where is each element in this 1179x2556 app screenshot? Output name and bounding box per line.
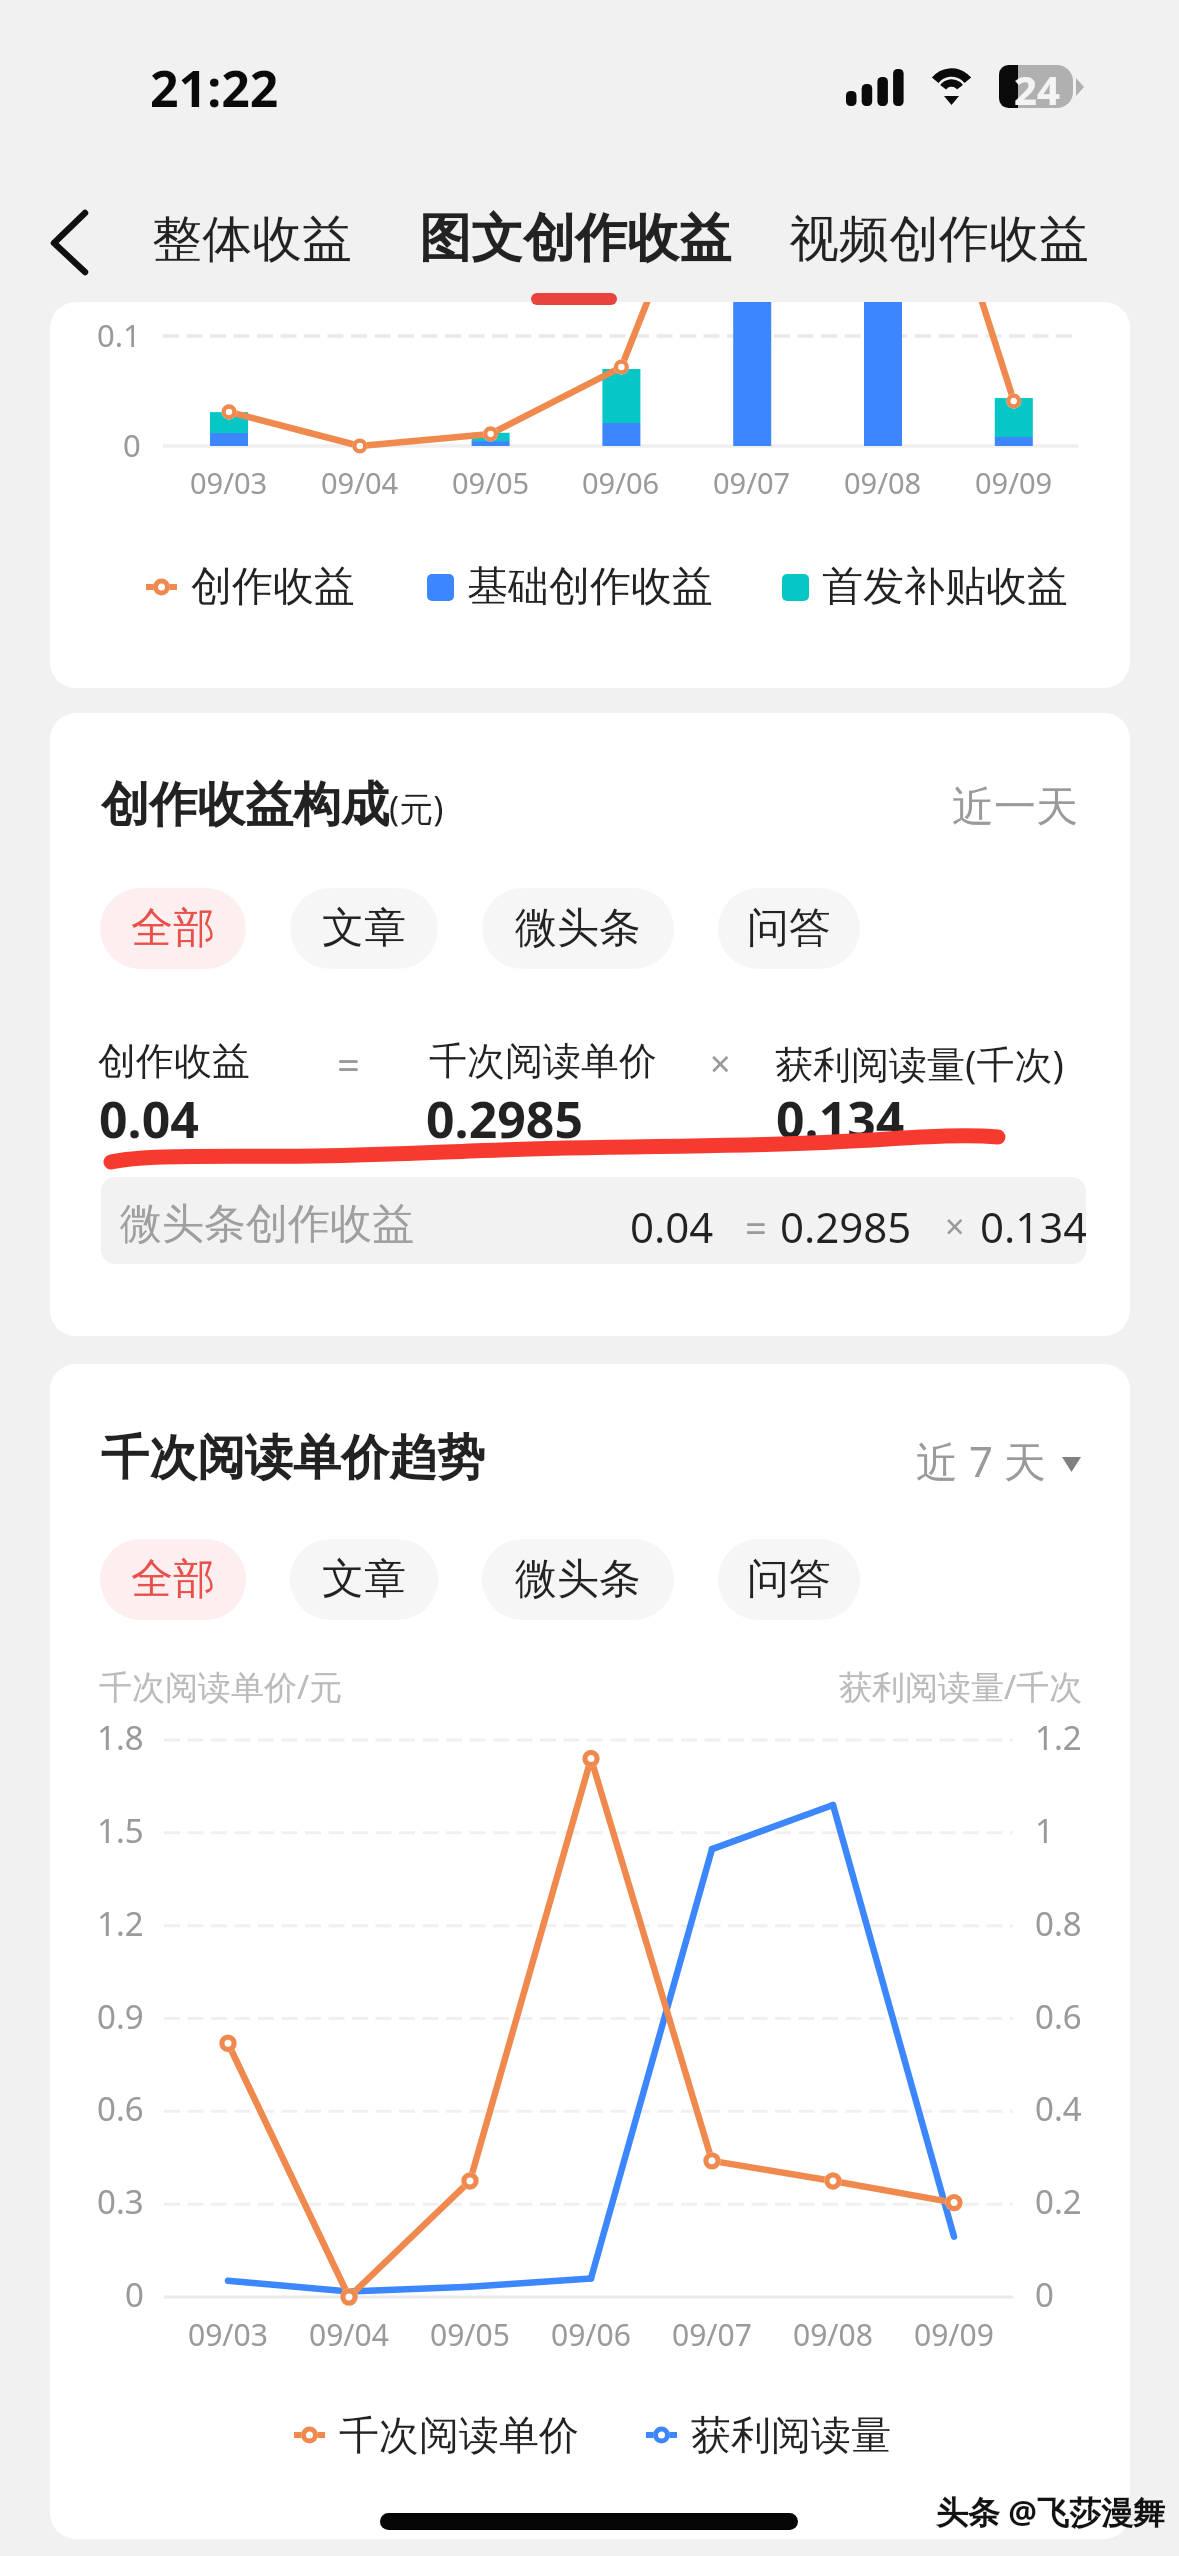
staticText: = bbox=[745, 1201, 767, 1253]
staticText: 0 bbox=[125, 2272, 144, 2317]
button[interactable]: 图文创作收益 bbox=[407, 194, 743, 284]
staticText: 0 bbox=[1035, 2272, 1054, 2317]
staticText: 0.2985 bbox=[780, 1198, 912, 1255]
staticText: 09/06 bbox=[582, 463, 660, 502]
staticText: 千次阅读单价/元 bbox=[99, 1664, 343, 1709]
staticText: 千次阅读单价 bbox=[339, 2410, 579, 2460]
staticText: 获利阅读量 bbox=[691, 2410, 891, 2460]
button[interactable]: 问答 bbox=[718, 888, 860, 969]
staticText: 09/09 bbox=[914, 2314, 994, 2355]
button[interactable]: 近一天 bbox=[952, 781, 1078, 834]
staticText: 0.134 bbox=[776, 1085, 905, 1153]
staticText: 1.2 bbox=[97, 1901, 144, 1946]
staticText: 1.8 bbox=[97, 1715, 144, 1760]
staticText: 近一天 bbox=[952, 781, 1078, 834]
button[interactable]: 微头条创作收益 bbox=[101, 1177, 1086, 1264]
staticText: 千次阅读单价 bbox=[429, 1037, 657, 1085]
staticText: 微头条创作收益 bbox=[120, 1198, 414, 1251]
staticText: 09/05 bbox=[430, 2314, 510, 2355]
staticText: 0.9 bbox=[97, 1994, 144, 2039]
button[interactable]: 近 7 天 bbox=[916, 1432, 1081, 1489]
staticText: 问答 bbox=[747, 1553, 831, 1606]
button[interactable]: 全部 bbox=[100, 1539, 246, 1620]
staticText: 09/04 bbox=[321, 463, 399, 502]
staticText: 0.8 bbox=[1035, 1901, 1082, 1946]
button[interactable]: 微头条 bbox=[482, 888, 674, 969]
staticText: 09/07 bbox=[672, 2314, 752, 2355]
staticText: 全部 bbox=[131, 1553, 215, 1606]
staticText: 0.1 bbox=[97, 314, 141, 356]
staticText: 0.04 bbox=[99, 1085, 199, 1153]
button[interactable]: Back bbox=[20, 190, 120, 296]
staticText: 首发补贴收益 bbox=[822, 561, 1068, 613]
staticText: 全部 bbox=[131, 902, 215, 955]
staticText: 0.6 bbox=[1035, 1994, 1082, 2039]
staticText: 微头条 bbox=[515, 902, 641, 955]
staticText: 21:22 bbox=[150, 54, 279, 122]
staticText: 09/06 bbox=[551, 2314, 631, 2355]
button[interactable]: 微头条 bbox=[482, 1539, 674, 1620]
staticText: 问答 bbox=[747, 902, 831, 955]
staticText: 文章 bbox=[322, 902, 406, 955]
staticText: 09/09 bbox=[975, 463, 1053, 502]
staticText: 0.2985 bbox=[426, 1085, 584, 1153]
staticText: 创作收益构成 bbox=[101, 775, 389, 835]
button[interactable]: 视频创作收益 bbox=[777, 196, 1101, 283]
staticText: 千次阅读单价趋势 bbox=[101, 1428, 485, 1488]
staticText: 文章 bbox=[322, 1553, 406, 1606]
staticText: 24 bbox=[1014, 62, 1060, 116]
staticText: 获利阅读量/千次 bbox=[839, 1664, 1083, 1709]
staticText: 微头条 bbox=[515, 1553, 641, 1606]
staticText: = bbox=[337, 1037, 360, 1091]
staticText: 0.6 bbox=[97, 2086, 144, 2131]
staticText: 头条 @飞莎漫舞 bbox=[936, 2490, 1166, 2534]
staticText: 1.2 bbox=[1035, 1715, 1082, 1760]
staticText: 09/04 bbox=[309, 2314, 389, 2355]
staticText: 09/03 bbox=[188, 2314, 268, 2355]
staticText: 0.2 bbox=[1035, 2179, 1082, 2224]
staticText: 创作收益 bbox=[191, 561, 355, 613]
staticText: 0.04 bbox=[630, 1198, 714, 1255]
staticText: 09/07 bbox=[713, 463, 791, 502]
staticText: 1.5 bbox=[97, 1808, 144, 1853]
staticText: 视频创作收益 bbox=[789, 208, 1089, 271]
staticText: 09/03 bbox=[190, 463, 268, 502]
staticText: 1 bbox=[1035, 1808, 1054, 1853]
staticText: 获利阅读量(千次) bbox=[775, 1037, 1064, 1089]
staticText: 09/05 bbox=[452, 463, 530, 502]
staticText: 图文创作收益 bbox=[419, 206, 731, 272]
staticText: 0.3 bbox=[97, 2179, 144, 2224]
staticText: 09/08 bbox=[793, 2314, 873, 2355]
button[interactable]: 全部 bbox=[100, 888, 246, 969]
staticText: (元) bbox=[389, 785, 444, 831]
staticText: 0.4 bbox=[1035, 2086, 1082, 2131]
staticText: 0 bbox=[123, 424, 141, 466]
staticText: 基础创作收益 bbox=[467, 561, 713, 613]
staticText: 近 7 天 bbox=[916, 1432, 1046, 1489]
staticText: × bbox=[945, 1203, 965, 1249]
staticText: 创作收益 bbox=[98, 1037, 250, 1085]
staticText: 09/08 bbox=[844, 463, 922, 502]
button[interactable]: 文章 bbox=[290, 888, 438, 969]
staticText: × bbox=[710, 1039, 731, 1088]
button[interactable]: 文章 bbox=[290, 1539, 438, 1620]
staticText: 0.134 bbox=[980, 1198, 1086, 1255]
button[interactable]: 整体收益 bbox=[140, 196, 364, 283]
button[interactable]: 问答 bbox=[718, 1539, 860, 1620]
staticText: 整体收益 bbox=[152, 208, 352, 271]
